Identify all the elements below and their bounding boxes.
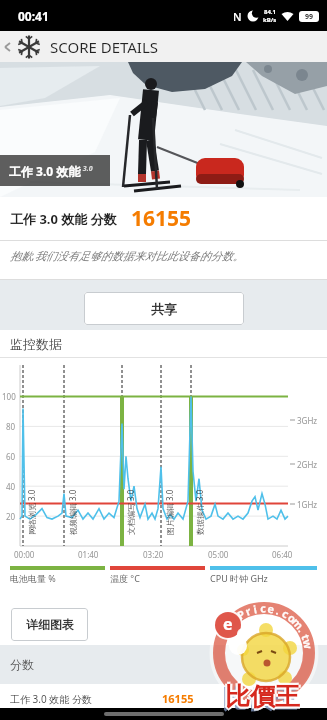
staticText: 工作 3.0 效能	[9, 163, 81, 179]
staticText: CPU 时钟 GHz	[210, 572, 268, 584]
staticText: 工作 3.0 效能 分数	[10, 210, 117, 228]
staticText: 工作 3.0 效能 分数	[10, 692, 92, 706]
staticText: 电池电量 %	[10, 572, 56, 584]
button[interactable]: 详细图表	[11, 608, 88, 641]
staticText: 抱歉,我们没有足够的数据来对比此设备的分数。	[10, 248, 244, 263]
button[interactable]: 工作 3.0 效能 分数	[0, 684, 327, 708]
staticText: 温度 °C	[110, 572, 140, 584]
staticText: 84.1	[264, 8, 276, 16]
staticText: 16155	[131, 204, 192, 233]
button[interactable]: SCORE DETAILS	[0, 31, 327, 62]
staticText: 99	[305, 12, 314, 22]
staticText: 共享	[151, 301, 177, 317]
staticText: 3.0	[81, 164, 93, 174]
staticText: 详细图表	[26, 617, 74, 632]
staticText: N	[233, 9, 242, 24]
staticText: 16155	[162, 691, 194, 706]
button[interactable]: 工作 3.0 效能 分数	[0, 197, 327, 240]
staticText: SCORE DETAILS	[50, 37, 159, 57]
staticText: 监控数据	[10, 336, 62, 352]
button[interactable]: 共享	[84, 292, 244, 325]
staticText: 00:41	[18, 8, 49, 24]
staticText: kB/s	[263, 16, 277, 24]
staticText: 分数	[10, 657, 34, 672]
